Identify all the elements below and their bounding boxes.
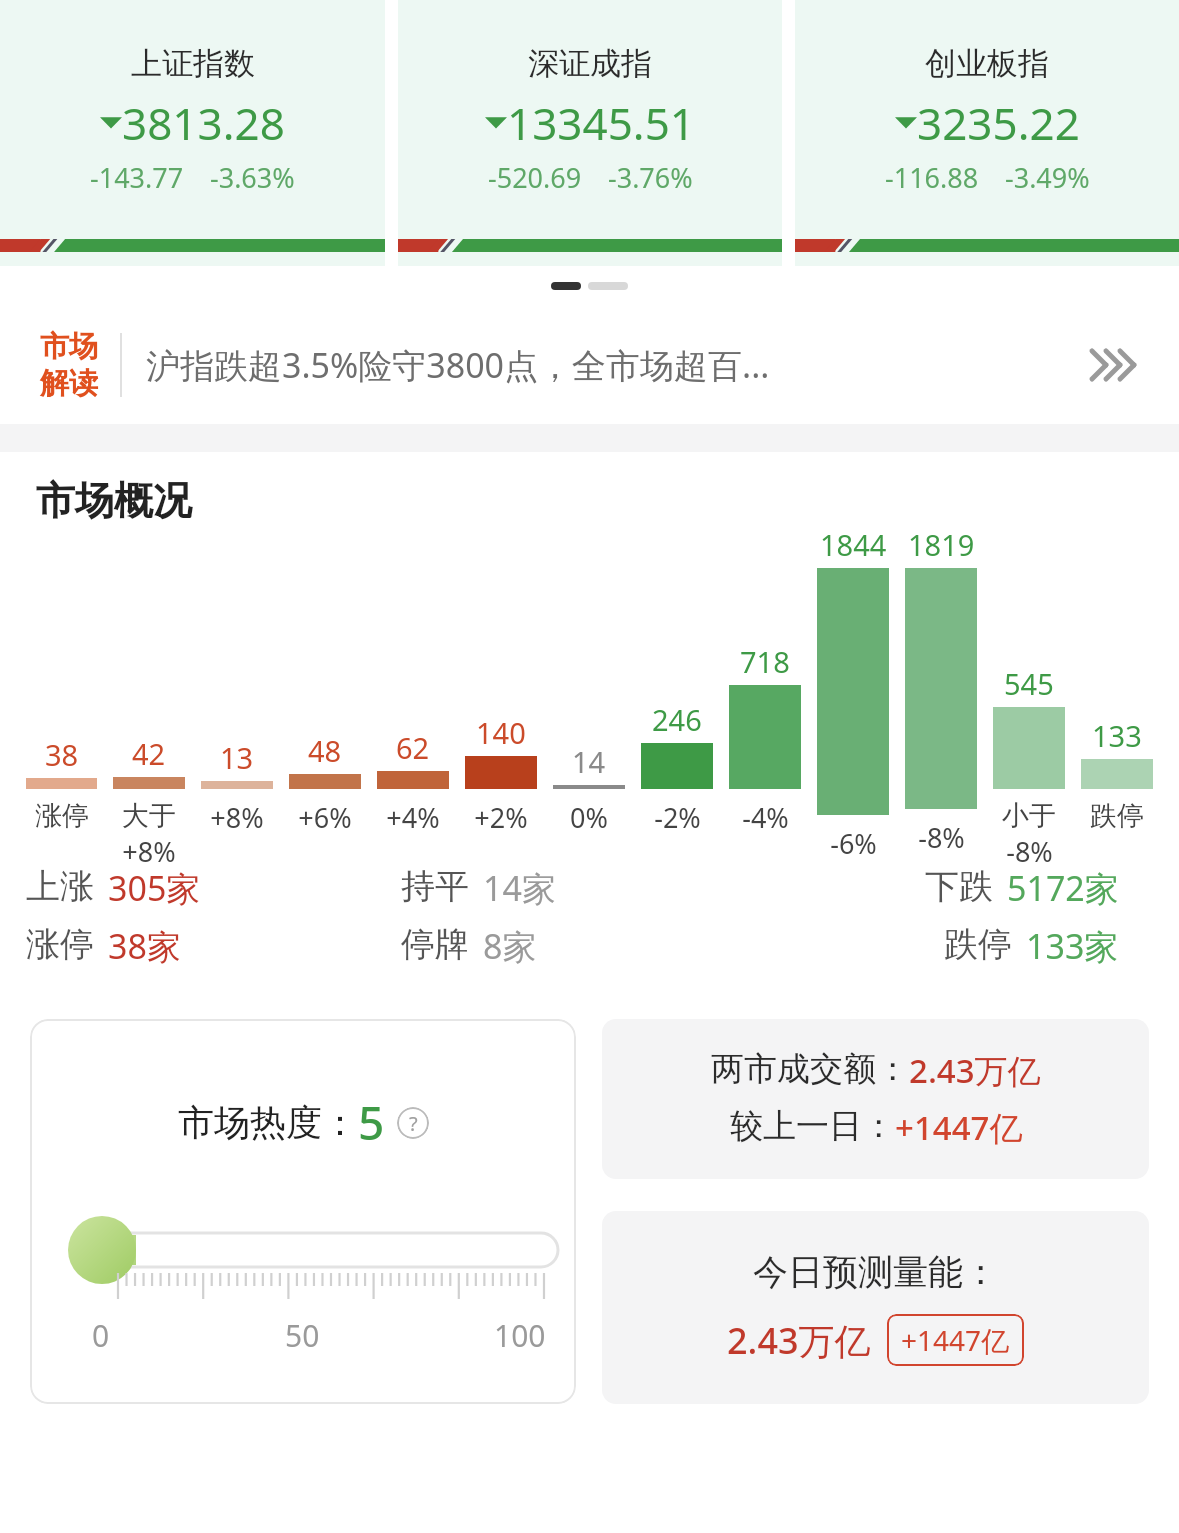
staticText: 38 [45,735,79,774]
staticText: 5 [358,1091,385,1154]
staticText: 14 [572,742,606,781]
staticText: +8% [122,833,176,865]
staticText: 133 [1092,716,1142,755]
staticText: 涨停 [26,923,94,966]
staticText: 解读 [40,365,98,402]
staticText: 今日预测量能： [753,1250,998,1294]
staticText: 下跌 [925,865,993,908]
staticText: 涨停 [35,799,89,833]
staticText: -8% [1006,833,1053,865]
staticText: 市场 [40,328,98,365]
staticText: +1447亿 [895,1105,1023,1150]
staticText: 市场概况 [36,476,192,525]
staticText: 市场热度： [178,1100,358,1145]
staticText: 两市成交额： [711,1048,909,1090]
button[interactable]: 市场 [0,306,1179,424]
staticText: +4% [386,799,440,836]
staticText: +8% [210,799,264,836]
staticText: 持平 [401,865,469,908]
button[interactable]: Help [397,1107,429,1139]
staticText: -4% [742,799,789,836]
staticText: -3.63% [210,159,295,196]
staticText: 沪指跌超3.5%险守3800点，全市场超百... [146,342,1085,388]
staticText: -2% [654,799,701,836]
button[interactable]: 深证成指 [398,0,782,266]
staticText: 上证指数 [131,44,255,83]
staticText: 100 [494,1315,546,1356]
staticText: 3235.22 [917,93,1080,153]
staticText: 2.43万亿 [909,1048,1041,1093]
staticText: 305家 [108,865,201,911]
staticText: 0 [92,1315,110,1356]
staticText: 48 [308,731,342,770]
staticText: -520.69 [488,159,582,196]
staticText: 545 [1004,664,1054,703]
staticText: 上涨 [26,865,94,908]
staticText: 5172家 [1007,865,1119,911]
button[interactable]: 市场热度： [30,1019,576,1404]
staticText: 跌停 [944,923,1012,966]
staticText: 创业板指 [925,44,1049,83]
staticText: 14家 [483,865,556,911]
staticText: 3813.28 [122,93,285,153]
staticText: -8% [918,819,965,856]
staticText: 跌停 [1090,799,1144,833]
button[interactable]: 今日预测量能： [602,1211,1149,1404]
staticText: -3.49% [1005,159,1090,196]
staticText: +1447亿 [901,1321,1010,1359]
staticText: 246 [652,700,702,739]
staticText: -3.76% [608,159,693,196]
staticText: 2.43万亿 [727,1316,871,1365]
staticText: 133家 [1026,923,1119,969]
button[interactable]: 创业板指 [795,0,1179,266]
staticText: 深证成指 [528,44,652,83]
staticText: 停牌 [401,923,469,966]
staticText: 1819 [908,525,975,564]
staticText: 1844 [820,525,887,564]
staticText: -143.77 [90,159,184,196]
staticText: ? [409,1110,418,1137]
staticText: 13 [220,738,254,777]
staticText: +6% [298,799,352,836]
staticText: 62 [396,728,430,767]
staticText: -6% [830,825,877,862]
button[interactable]: 两市成交额： [602,1019,1149,1179]
button[interactable]: 上证指数 [0,0,385,266]
staticText: +2% [474,799,528,836]
staticText: 140 [476,713,526,752]
staticText: 13345.51 [507,93,695,153]
staticText: 较上一日： [730,1105,895,1147]
staticText: 8家 [483,923,537,969]
staticText: 50 [285,1315,320,1356]
staticText: 小于 [1002,799,1056,833]
staticText: 0% [570,799,608,836]
staticText: 718 [740,642,790,681]
staticText: 38家 [108,923,181,969]
staticText: 大于 [122,799,176,833]
staticText: -116.88 [885,159,979,196]
staticText: 42 [132,734,166,773]
other: More [1085,345,1155,385]
